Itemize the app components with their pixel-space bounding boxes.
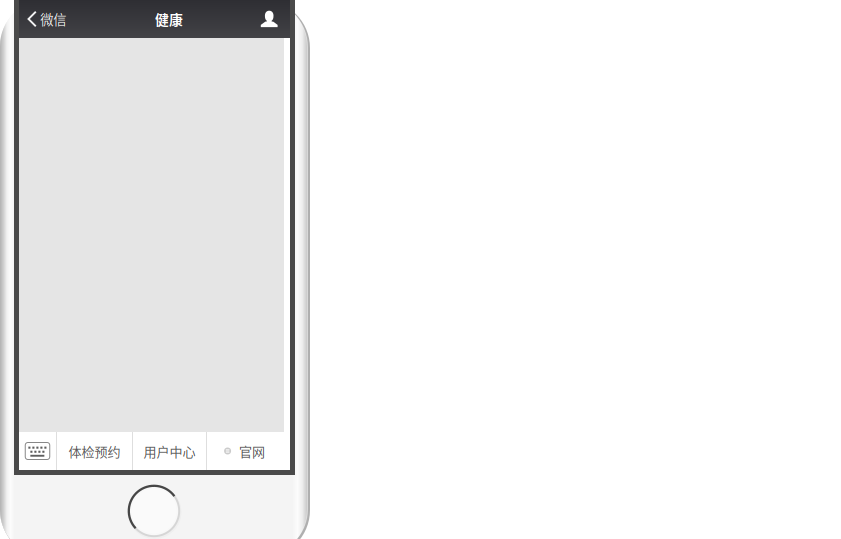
button[interactable]: 体检预约 [57, 432, 132, 470]
staticText: 健康 [155, 9, 183, 29]
staticText: 官网 [239, 441, 265, 460]
button[interactable]: 微信 [19, 0, 93, 38]
button[interactable]: 用户中心 [133, 432, 206, 470]
staticText: 体检预约 [68, 441, 120, 460]
staticText: 微信 [40, 9, 66, 29]
button[interactable]: Keyboard [19, 432, 56, 470]
staticText: 用户中心 [143, 441, 195, 460]
button[interactable]: 官网 [207, 432, 290, 470]
button[interactable]: Contact [236, 0, 290, 38]
